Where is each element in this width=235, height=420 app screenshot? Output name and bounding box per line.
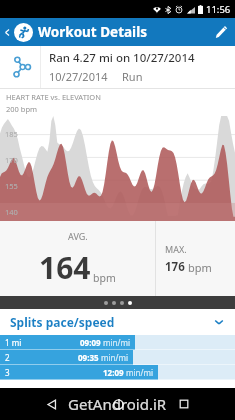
staticText: 10/27/2014 xyxy=(49,69,108,84)
button[interactable]: Page 3 xyxy=(120,301,124,305)
staticText: min/mi xyxy=(103,337,131,348)
button[interactable]: Heart rate and elevation chart xyxy=(0,115,235,221)
staticText: HEART RATE vs. ELEVATION xyxy=(6,92,101,102)
staticText: 170 xyxy=(5,155,18,165)
button[interactable]: Page 1 xyxy=(104,301,108,305)
button[interactable]: Back xyxy=(35,388,67,420)
staticText: GetAndroid.iR xyxy=(68,394,167,414)
button[interactable]: Ran 4.27 mi on 10/27/2014 xyxy=(0,46,235,88)
button[interactable]: Splits pace/speed xyxy=(0,309,235,335)
staticText: min/mi xyxy=(101,352,129,363)
staticText: AVG. xyxy=(68,230,88,242)
staticText: 3 xyxy=(5,367,10,378)
staticText: 12:09 xyxy=(103,367,124,378)
button[interactable]: 3 xyxy=(0,365,235,380)
button[interactable]: Page 2 xyxy=(112,301,116,305)
staticText: 155 xyxy=(5,181,18,191)
button[interactable]: 2 xyxy=(0,350,235,365)
staticText: 2 xyxy=(5,352,10,363)
staticText: MAX. xyxy=(165,243,187,255)
staticText: 176 xyxy=(165,259,185,275)
staticText: 09:35 xyxy=(78,352,99,363)
button[interactable]: Recents xyxy=(168,388,200,420)
staticText: 185 xyxy=(5,129,18,139)
staticText: Ran 4.27 mi on 10/27/2014 xyxy=(49,50,195,66)
staticText: min/mi xyxy=(126,367,154,378)
button[interactable]: Page 4 xyxy=(128,301,132,305)
button[interactable]: MAX. xyxy=(156,221,235,296)
staticText: 11:56 xyxy=(206,3,231,16)
staticText: Run xyxy=(122,69,143,84)
staticText: 140 xyxy=(5,207,18,217)
staticText: 09:09 xyxy=(80,337,101,348)
staticText: Workout Details xyxy=(38,23,147,41)
button[interactable]: Home xyxy=(102,388,134,420)
staticText: bpm xyxy=(188,260,212,275)
staticText: 1 mi xyxy=(5,337,22,348)
button[interactable]: 1 mi xyxy=(0,335,235,350)
staticText: Splits pace/speed xyxy=(10,314,115,330)
button[interactable]: Back xyxy=(0,18,14,46)
button[interactable]: AVG. xyxy=(0,221,155,296)
staticText: 164 xyxy=(39,247,91,288)
staticText: bpm xyxy=(93,271,116,285)
staticText: 200 bpm xyxy=(6,104,38,114)
button[interactable]: Edit xyxy=(207,18,235,46)
